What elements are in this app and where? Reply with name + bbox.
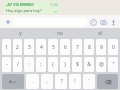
button[interactable]: 1 xyxy=(2,39,11,55)
button[interactable]: ) xyxy=(60,57,70,72)
button[interactable]: Backspace xyxy=(97,74,118,89)
button[interactable]: " xyxy=(108,57,118,72)
staticText: ! xyxy=(74,78,76,85)
staticText: - xyxy=(6,61,8,68)
staticText: 6 xyxy=(64,44,67,51)
button[interactable]: Stickers xyxy=(89,18,97,26)
button[interactable]: $ xyxy=(72,57,82,72)
staticText: @ xyxy=(99,61,104,68)
staticText: no xyxy=(57,30,63,36)
staticText: 11:04 xyxy=(50,3,58,7)
staticText: 8 xyxy=(88,44,91,51)
button[interactable]: Voice message xyxy=(109,18,117,26)
button[interactable]: Attach xyxy=(3,17,12,26)
staticText: 1 xyxy=(5,44,8,51)
staticText: ) xyxy=(64,61,66,68)
button[interactable]: 6 xyxy=(60,39,70,55)
staticText: ( xyxy=(52,61,54,68)
staticText: . xyxy=(32,78,34,85)
button[interactable]: 3 xyxy=(24,39,34,55)
staticText: 2 xyxy=(16,44,19,51)
staticText: ? xyxy=(60,78,63,85)
staticText: 0 xyxy=(112,44,115,51)
button[interactable]: : xyxy=(24,57,34,72)
button[interactable]: 5 xyxy=(48,39,58,55)
button[interactable]: 8 xyxy=(84,39,94,55)
button[interactable]: ( xyxy=(48,57,58,72)
staticText: el xyxy=(98,30,102,36)
button[interactable]: no xyxy=(40,28,80,38)
staticText: : xyxy=(28,61,30,68)
button[interactable]: 7 xyxy=(72,39,82,55)
staticText: ; xyxy=(40,61,42,68)
staticText: +57 316 8909827 xyxy=(6,2,34,7)
staticText: , xyxy=(46,78,48,85)
staticText: " xyxy=(112,61,115,68)
button[interactable]: Camera xyxy=(99,18,107,26)
staticText: 3 xyxy=(28,44,31,51)
staticText: & xyxy=(87,61,91,68)
button[interactable]: @ xyxy=(96,57,106,72)
staticText: / xyxy=(17,61,19,68)
button[interactable]: 2 xyxy=(13,39,22,55)
button[interactable]: - xyxy=(2,57,11,72)
button[interactable]: , xyxy=(41,74,53,89)
button[interactable]: el xyxy=(80,28,120,38)
button[interactable]: +57 316 8909827 xyxy=(4,1,60,14)
button[interactable]: ' xyxy=(83,74,95,89)
button[interactable]: ? xyxy=(55,74,67,89)
button[interactable]: Symbols xyxy=(2,74,24,89)
button[interactable]: 9 xyxy=(96,39,106,55)
staticText: 5 xyxy=(52,44,55,51)
staticText: ' xyxy=(88,78,90,85)
button[interactable]: y xyxy=(0,28,40,38)
staticText: 9 xyxy=(100,44,103,51)
button[interactable]: / xyxy=(13,57,22,72)
staticText: 7 xyxy=(76,44,79,51)
button[interactable]: ! xyxy=(69,74,81,89)
button[interactable]: & xyxy=(84,57,94,72)
staticText: $ xyxy=(76,61,79,68)
button[interactable]: 4 xyxy=(36,39,46,55)
staticText: Hey algo para hoy? xyxy=(6,8,42,13)
staticText: 4 xyxy=(40,44,43,51)
button[interactable]: 0 xyxy=(108,39,118,55)
staticText: y xyxy=(19,30,22,36)
button[interactable]: ; xyxy=(36,57,46,72)
button[interactable]: . xyxy=(26,74,39,89)
staticText: #+= xyxy=(9,79,17,84)
